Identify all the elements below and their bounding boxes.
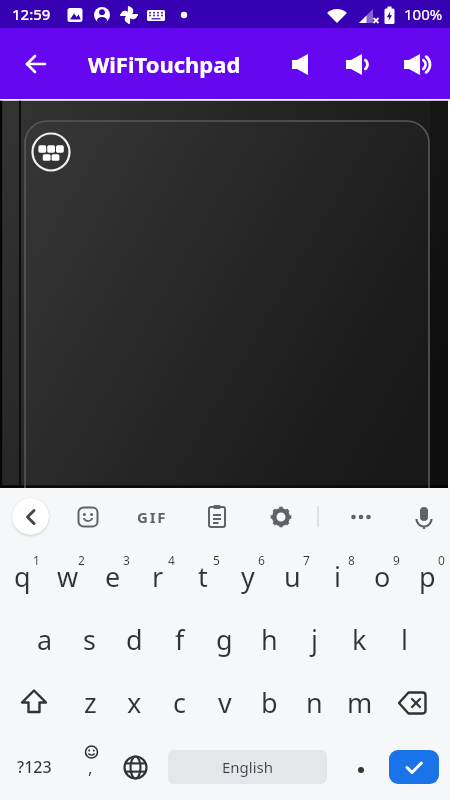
staticText: b bbox=[261, 684, 278, 721]
button[interactable]: f bbox=[157, 608, 202, 671]
button[interactable]: h bbox=[247, 608, 292, 671]
button[interactable]: k bbox=[337, 608, 382, 671]
staticText: s bbox=[83, 621, 96, 658]
staticText: 1 bbox=[33, 552, 40, 568]
staticText: 100% bbox=[404, 4, 443, 24]
button[interactable]: English bbox=[158, 734, 338, 800]
button[interactable]: d bbox=[112, 608, 157, 671]
staticText: q bbox=[14, 558, 31, 595]
button[interactable] bbox=[337, 40, 385, 88]
button[interactable]: GIF bbox=[130, 495, 174, 539]
staticText: f bbox=[175, 621, 185, 658]
staticText: z bbox=[84, 684, 97, 721]
button[interactable] bbox=[383, 734, 450, 800]
button[interactable]: y bbox=[225, 545, 270, 608]
button[interactable]: q bbox=[0, 545, 45, 608]
staticText: j bbox=[311, 621, 318, 658]
button[interactable] bbox=[12, 498, 49, 535]
button[interactable]: x bbox=[112, 671, 157, 734]
staticText: o bbox=[374, 558, 391, 595]
button[interactable]: m bbox=[337, 671, 382, 734]
staticText: c bbox=[173, 684, 186, 721]
button[interactable]: ?123 bbox=[0, 734, 68, 800]
button[interactable] bbox=[0, 99, 450, 488]
button[interactable] bbox=[197, 497, 237, 537]
button[interactable]: e bbox=[90, 545, 135, 608]
staticText: a bbox=[37, 621, 53, 658]
button[interactable]: l bbox=[382, 608, 427, 671]
staticText: 2 bbox=[78, 552, 85, 568]
staticText: m bbox=[347, 684, 373, 721]
button[interactable]: s bbox=[67, 608, 112, 671]
staticText: ?123 bbox=[17, 756, 52, 778]
button[interactable] bbox=[280, 40, 328, 88]
staticText: e bbox=[105, 558, 121, 595]
staticText: r bbox=[152, 558, 164, 595]
staticText: x bbox=[127, 684, 142, 721]
staticText: 3 bbox=[123, 552, 130, 568]
button[interactable]: j bbox=[292, 608, 337, 671]
button[interactable]: n bbox=[292, 671, 337, 734]
button[interactable]: b bbox=[247, 671, 292, 734]
staticText: 9 bbox=[393, 552, 400, 568]
staticText: 6 bbox=[258, 552, 265, 568]
button[interactable]: p bbox=[405, 545, 450, 608]
staticText: t bbox=[198, 558, 208, 595]
staticText: d bbox=[126, 621, 143, 658]
staticText: 4 bbox=[168, 552, 175, 568]
staticText: h bbox=[261, 621, 278, 658]
button[interactable]: , bbox=[68, 734, 113, 800]
staticText: , bbox=[88, 756, 93, 779]
button[interactable]: t bbox=[180, 545, 225, 608]
staticText: u bbox=[284, 558, 301, 595]
staticText: GIF bbox=[137, 507, 168, 527]
staticText: 0 bbox=[438, 552, 445, 568]
button[interactable] bbox=[404, 497, 444, 537]
button[interactable]: w bbox=[45, 545, 90, 608]
button[interactable]: g bbox=[202, 608, 247, 671]
staticText: 5 bbox=[213, 552, 220, 568]
staticText: i bbox=[334, 558, 341, 595]
button[interactable]: z bbox=[68, 671, 112, 734]
staticText: 7 bbox=[303, 552, 310, 568]
button[interactable]: i bbox=[315, 545, 360, 608]
staticText: n bbox=[306, 684, 323, 721]
button[interactable]: u bbox=[270, 545, 315, 608]
button[interactable] bbox=[338, 734, 383, 800]
staticText: WiFiTouchpad bbox=[88, 49, 241, 79]
staticText: 12:59 bbox=[12, 4, 51, 24]
staticText: 8 bbox=[348, 552, 355, 568]
staticText: English bbox=[222, 757, 274, 777]
staticText: w bbox=[57, 558, 79, 595]
staticText: k bbox=[352, 621, 367, 658]
button[interactable]: v bbox=[202, 671, 247, 734]
button[interactable]: r bbox=[135, 545, 180, 608]
staticText: p bbox=[419, 558, 436, 595]
button[interactable] bbox=[396, 40, 444, 88]
staticText: y bbox=[241, 558, 255, 595]
button[interactable] bbox=[261, 497, 301, 537]
button[interactable] bbox=[341, 497, 381, 537]
button[interactable] bbox=[0, 671, 68, 734]
staticText: v bbox=[218, 684, 232, 721]
button[interactable] bbox=[113, 734, 158, 800]
button[interactable]: o bbox=[360, 545, 405, 608]
button[interactable] bbox=[68, 497, 108, 537]
button[interactable] bbox=[29, 130, 73, 174]
button[interactable] bbox=[382, 671, 450, 734]
button[interactable]: a bbox=[23, 608, 67, 671]
button[interactable] bbox=[12, 40, 60, 88]
button[interactable]: c bbox=[157, 671, 202, 734]
staticText: l bbox=[401, 621, 408, 658]
staticText: g bbox=[216, 621, 233, 658]
